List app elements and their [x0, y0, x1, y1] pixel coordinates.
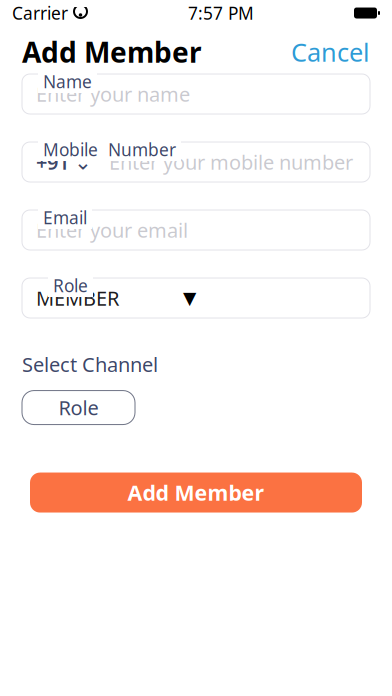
staticText: Role — [58, 394, 98, 421]
staticText: Enter your email — [36, 217, 188, 243]
staticText: Select Channel — [22, 351, 158, 378]
button[interactable]: MEMBER — [22, 278, 370, 318]
staticText: Enter your name — [36, 81, 190, 107]
button[interactable]: Cancel — [291, 35, 370, 69]
button[interactable]: Role — [22, 391, 135, 425]
staticText: ▼ — [183, 288, 196, 308]
staticText: Cancel — [291, 35, 370, 69]
staticText: Role — [53, 274, 88, 297]
staticText: Add Member — [127, 478, 264, 507]
staticText: ⌄ — [74, 150, 92, 174]
staticText: Name — [43, 70, 92, 93]
staticText: +91 — [36, 149, 69, 175]
staticText: Carrier — [12, 1, 68, 24]
staticText: Mobile Number — [43, 138, 176, 161]
staticText: Add Member — [22, 33, 202, 71]
staticText: Email — [43, 206, 87, 229]
staticText: MEMBER — [36, 285, 119, 311]
staticText: 7:57 PM — [188, 1, 254, 24]
staticText: Enter your mobile number — [109, 149, 353, 175]
button[interactable]: Add Member — [30, 473, 362, 513]
